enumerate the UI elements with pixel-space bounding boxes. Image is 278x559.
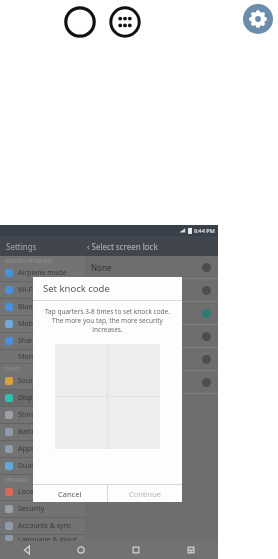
button[interactable]: All apps	[106, 3, 144, 41]
staticText: Knock Code	[91, 308, 136, 319]
button[interactable]: More...	[0, 350, 85, 363]
button[interactable]: Dual window	[163, 541, 218, 559]
staticText: Display	[18, 393, 42, 403]
staticText: Tap quarters 3-8 times to set knock code…	[44, 307, 171, 334]
button[interactable]: Home	[54, 541, 108, 559]
button[interactable]: Pattern	[85, 325, 218, 347]
button[interactable]: PIN	[85, 348, 218, 370]
button[interactable]: Cancel	[33, 485, 107, 502]
staticText: Settings	[6, 241, 37, 252]
staticText: WIRELESS NETWORKS	[5, 258, 52, 264]
button[interactable]: Dual window	[0, 458, 85, 474]
staticText: Airplane mode	[18, 268, 67, 278]
button[interactable]: Airplane mode	[0, 265, 85, 281]
staticText: Language & input	[18, 535, 77, 541]
button[interactable]: Password	[85, 371, 218, 393]
staticText: 9:44 PM	[194, 227, 215, 234]
button[interactable]: Knock Code	[85, 302, 218, 324]
staticText: ‹ Select screen lock	[87, 241, 158, 252]
staticText: Battery	[18, 427, 42, 437]
button[interactable]: Continue	[108, 485, 182, 502]
button[interactable]: Settings	[243, 4, 273, 34]
staticText: Wi-Fi	[18, 285, 35, 295]
staticText: Cancel	[58, 489, 82, 499]
staticText: Continue	[129, 489, 162, 499]
staticText: Location	[18, 487, 47, 497]
button[interactable]: Display	[0, 390, 85, 406]
button[interactable]: Circle	[61, 3, 99, 41]
staticText: Storage	[18, 410, 44, 420]
staticText: Pattern	[91, 331, 119, 342]
staticText: Swipe	[91, 285, 114, 296]
staticText: Bluetooth	[18, 302, 51, 312]
staticText: Dual window	[18, 461, 61, 471]
button[interactable]: Swipe	[85, 279, 218, 301]
button[interactable]: Recents	[108, 541, 163, 559]
staticText: Set knock code	[43, 282, 110, 295]
button[interactable]: Wi-Fi	[0, 282, 85, 298]
staticText: Apps	[18, 444, 35, 454]
button[interactable]: Back	[0, 541, 54, 559]
button[interactable]: Storage	[0, 407, 85, 423]
button[interactable]: Bluetooth	[0, 299, 85, 315]
staticText: Sound	[18, 376, 40, 386]
button[interactable]: Mobile data	[0, 316, 85, 332]
button[interactable]: Battery	[0, 424, 85, 440]
staticText: Accounts & sync	[18, 521, 72, 531]
button[interactable]: Apps	[0, 441, 85, 457]
staticText: More...	[18, 352, 41, 362]
button[interactable]: None	[85, 256, 218, 278]
staticText: Share & connect	[18, 336, 72, 346]
staticText: PERSONAL	[5, 477, 28, 483]
staticText: None	[91, 262, 112, 273]
button[interactable]: Accounts & sync	[0, 518, 85, 534]
button[interactable]: Security	[0, 501, 85, 517]
button[interactable]: Location	[0, 484, 85, 500]
staticText: DEVICE	[5, 366, 21, 372]
button[interactable]: Share & connect	[0, 333, 85, 349]
button[interactable]: Language & input	[0, 535, 85, 541]
staticText: Security	[18, 504, 45, 514]
button[interactable]: Sound	[0, 373, 85, 389]
staticText: Mobile data	[18, 319, 57, 329]
